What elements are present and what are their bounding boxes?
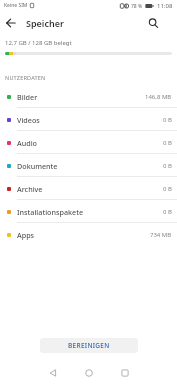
staticText: 0 B [163, 162, 172, 170]
staticText: Dokumente [17, 161, 58, 171]
staticText: 146,8 MB [145, 93, 172, 101]
button[interactable]: Audio [0, 131, 177, 154]
button[interactable] [0, 11, 22, 34]
staticText: Audio [17, 138, 38, 148]
staticText: 78 % [131, 3, 143, 10]
staticText: 0 B [163, 116, 172, 124]
staticText: Archive [17, 184, 43, 194]
button[interactable]: Bilder [0, 85, 177, 108]
button[interactable] [71, 353, 107, 384]
button[interactable]: BEREINIGEN [40, 338, 138, 353]
button[interactable]: Apps [0, 223, 177, 246]
staticText: 12,7 GB / 128 GB belegt [5, 39, 72, 47]
staticText: BEREINIGEN [68, 341, 110, 350]
button[interactable]: Videos [0, 108, 177, 131]
button[interactable] [107, 353, 143, 384]
button[interactable]: Archive [0, 177, 177, 200]
staticText: Bilder [17, 92, 38, 102]
button[interactable]: Dokumente [0, 154, 177, 177]
staticText: NUTZERDATEN [5, 74, 46, 81]
staticText: Speicher [26, 17, 64, 29]
staticText: Installationspakete [17, 207, 84, 217]
staticText: 734 MB [150, 231, 172, 239]
staticText: Apps [17, 230, 35, 240]
button[interactable]: Installationspakete [0, 200, 177, 223]
staticText: 0 B [163, 185, 172, 193]
button[interactable] [146, 16, 160, 30]
staticText: Videos [17, 115, 40, 125]
staticText: 0 B [163, 208, 172, 216]
staticText: 0 B [163, 139, 172, 147]
button[interactable] [35, 353, 71, 384]
staticText: 11:08 [157, 2, 173, 10]
staticText: Keine SIM [4, 2, 28, 9]
